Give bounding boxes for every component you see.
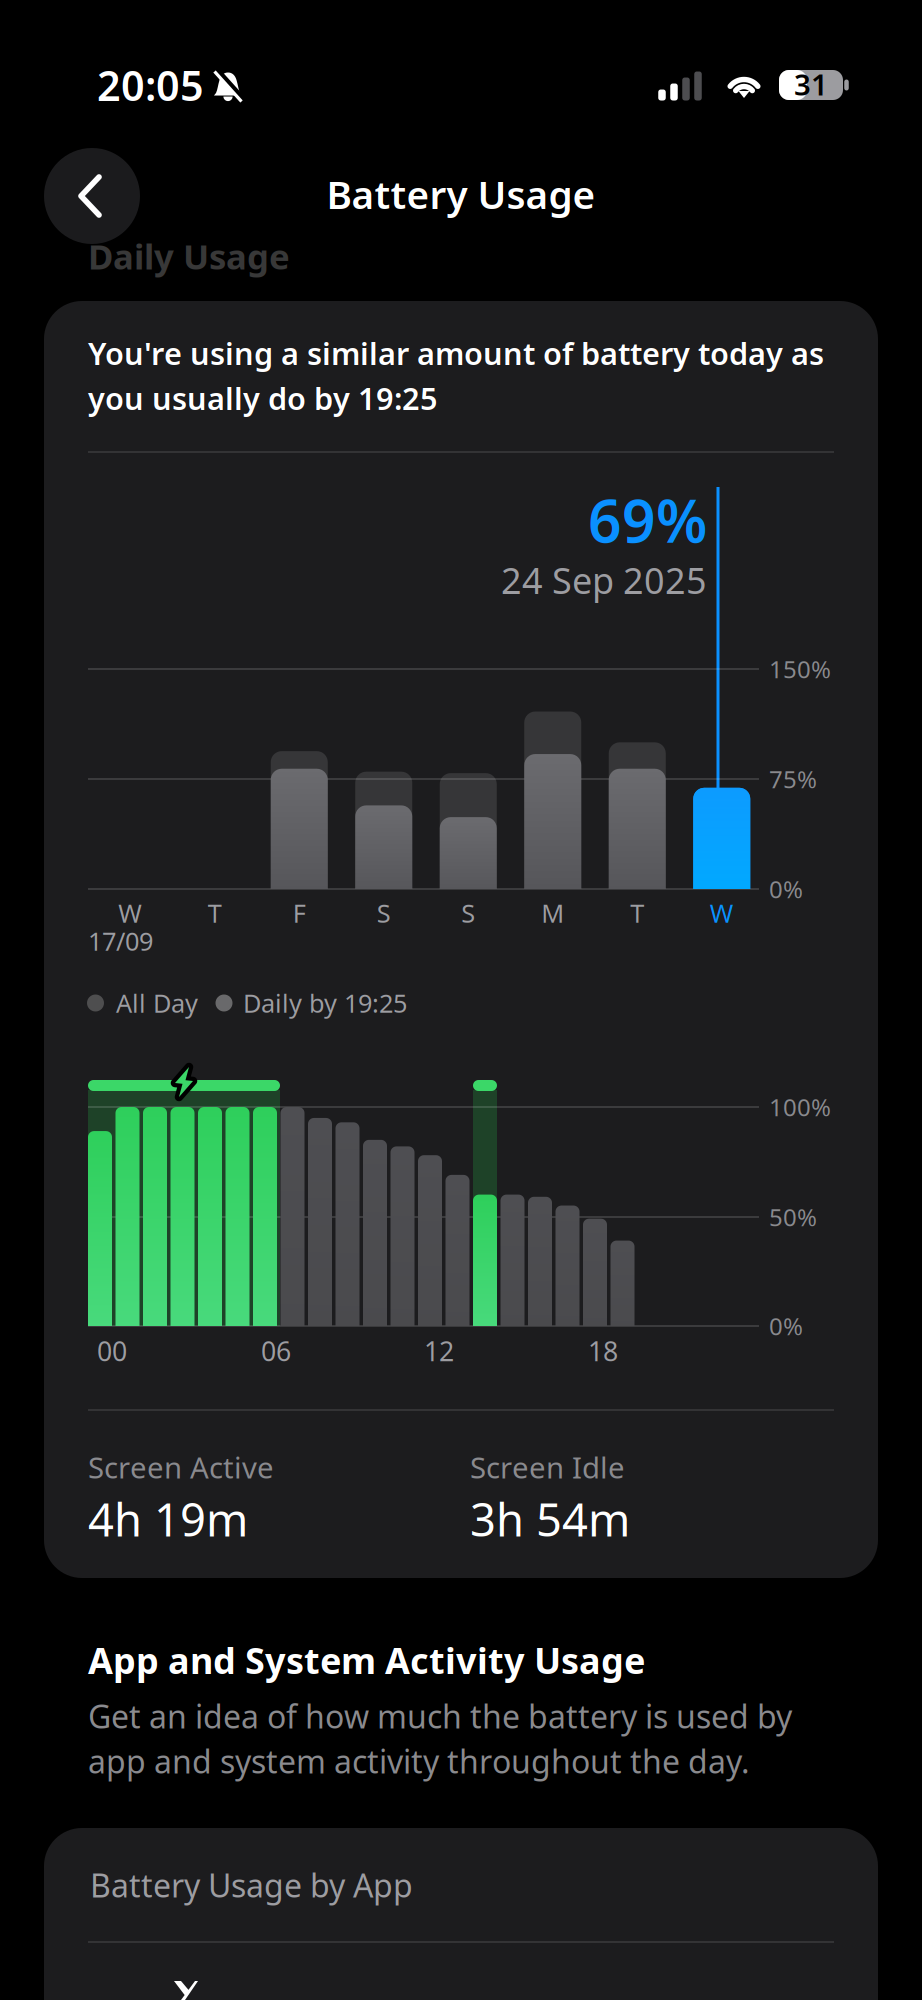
staticText: 17/09 (88, 924, 153, 958)
staticText: 4h 19m (88, 1489, 248, 1549)
staticText: 06 (261, 1333, 291, 1369)
staticText: F (293, 896, 306, 930)
staticText: 50% (769, 1201, 817, 1233)
staticText: Screen Active (88, 1447, 274, 1486)
button[interactable]: Back (44, 148, 140, 244)
staticText: 31 (794, 64, 828, 103)
staticText: 69% (588, 481, 707, 559)
staticText: 0% (769, 873, 803, 905)
staticText: 0% (769, 1310, 803, 1342)
staticText: T (630, 896, 644, 930)
staticText: 3h 54m (470, 1489, 630, 1549)
staticText: 150% (769, 653, 831, 685)
staticText: 18 (588, 1333, 618, 1369)
staticText: Battery Usage by App (90, 1864, 413, 1906)
staticText: W (118, 896, 142, 930)
staticText: M (541, 896, 564, 930)
staticText: You're using a similar amount of battery… (88, 333, 824, 373)
staticText: you usually do by 19:25 (88, 378, 438, 418)
staticText: 100% (769, 1091, 831, 1123)
staticText: T (208, 896, 222, 930)
staticText: Screen Idle (470, 1447, 625, 1486)
staticText: Get an idea of how much the battery is u… (88, 1695, 792, 1737)
staticText: S (461, 896, 475, 930)
staticText: 20:05 (97, 58, 204, 112)
staticText: App and System Activity Usage (88, 1636, 645, 1684)
staticText: All Day (116, 986, 198, 1020)
staticText: 00 (97, 1333, 127, 1369)
staticText: 24 Sep 2025 (501, 556, 707, 604)
staticText: 75% (769, 763, 817, 795)
staticText: Daily Usage (88, 233, 290, 279)
staticText: 12 (424, 1333, 454, 1369)
button[interactable]: X (174, 1981, 294, 2000)
staticText: W (710, 896, 734, 930)
staticText: Battery Usage (326, 168, 595, 220)
staticText: app and system activity throughout the d… (88, 1740, 750, 1782)
button[interactable]: Battery Usage by App (44, 1828, 922, 1942)
staticText: S (377, 896, 391, 930)
staticText: Daily by 19:25 (243, 986, 407, 1020)
